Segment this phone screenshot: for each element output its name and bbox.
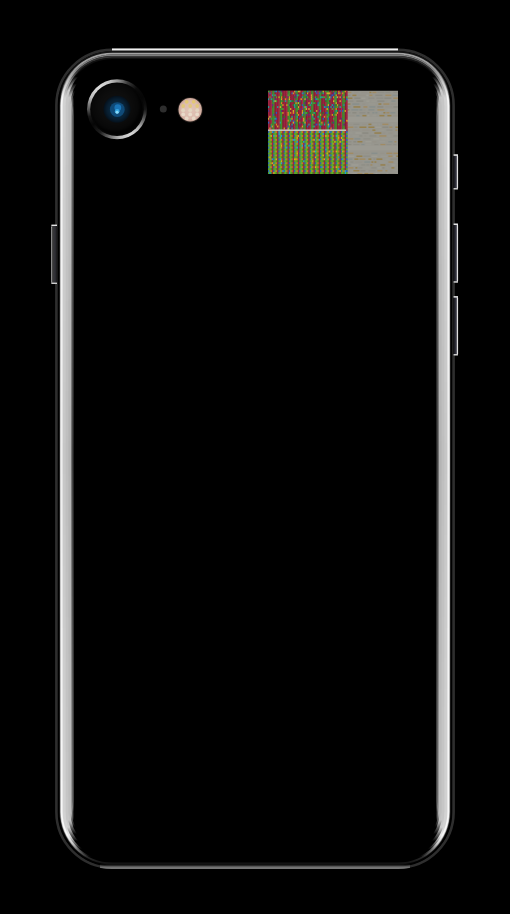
button[interactable]: True Tone flash	[178, 98, 203, 123]
button[interactable]: Screenshot preview	[268, 91, 398, 175]
button[interactable]: Camera	[87, 79, 147, 139]
button[interactable]: Ring silent switch	[49, 224, 59, 285]
button[interactable]: Volume down	[451, 295, 461, 357]
button[interactable]: Volume up	[451, 222, 461, 284]
button[interactable]: Power button	[451, 153, 461, 191]
button[interactable]: iPhone 7 jet black	[55, 300, 455, 700]
button[interactable]: Microphone	[156, 102, 171, 117]
